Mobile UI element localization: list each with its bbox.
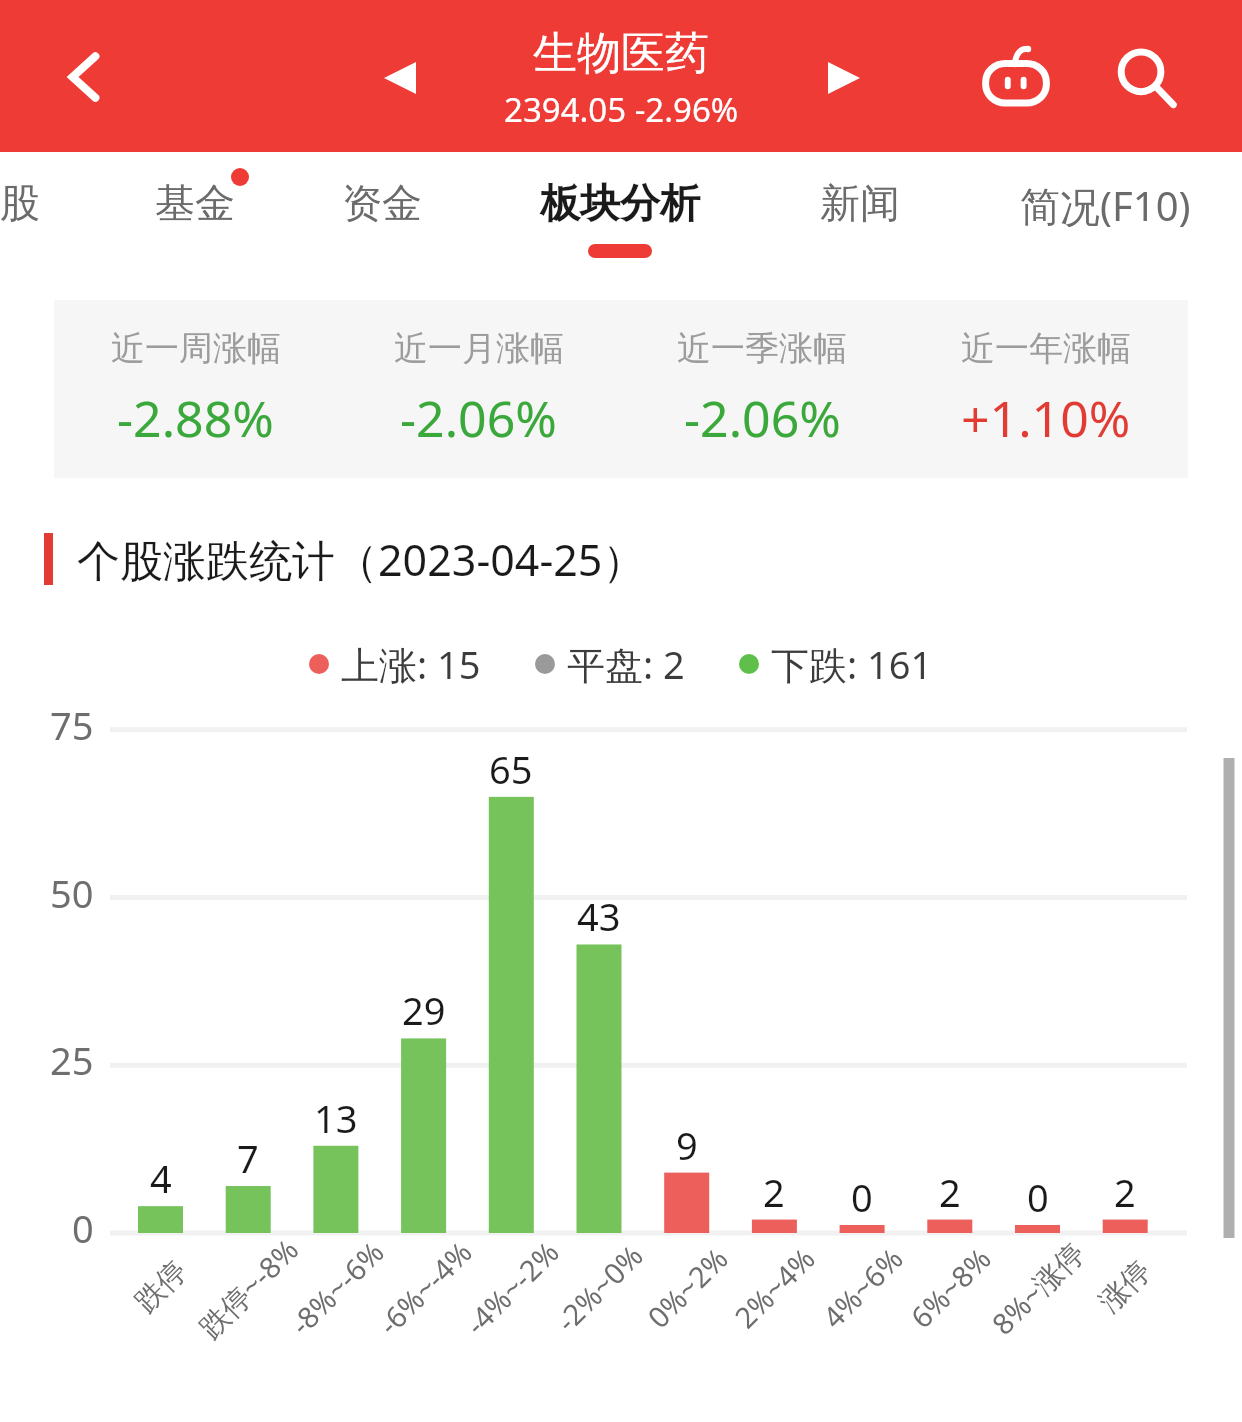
staticText: 4 xyxy=(150,1152,172,1204)
staticText: -2.06% xyxy=(400,384,557,452)
button[interactable]: 股 xyxy=(0,152,140,292)
staticText: 4%~6% xyxy=(814,1239,910,1336)
staticText: 板块分析 xyxy=(540,178,700,228)
staticText: 上涨: 15 xyxy=(341,638,481,690)
button[interactable]: 资金 xyxy=(262,152,502,292)
staticText: -2%~0% xyxy=(547,1235,651,1339)
button[interactable]: 近一年涨幅 xyxy=(904,300,1188,478)
staticText: 近一月涨幅 xyxy=(394,327,564,370)
staticText: 0 xyxy=(1027,1171,1049,1223)
staticText: 新闻 xyxy=(820,178,900,228)
staticText: -4%~-2% xyxy=(456,1232,567,1343)
button[interactable]: 简况(F10) xyxy=(985,152,1225,292)
staticText: 股 xyxy=(0,178,40,228)
staticText: 基金 xyxy=(155,178,235,228)
staticText: 75 xyxy=(50,699,94,751)
staticText: 涨停 xyxy=(1091,1253,1159,1320)
staticText: 25 xyxy=(50,1034,94,1086)
staticText: 9 xyxy=(676,1119,698,1171)
staticText: 0 xyxy=(72,1202,94,1254)
button[interactable]: Back xyxy=(44,36,126,118)
staticText: 跌停~-8% xyxy=(190,1230,307,1346)
button[interactable]: 平盘: 2 xyxy=(535,638,685,690)
button[interactable]: 近一月涨幅 xyxy=(337,300,620,478)
button[interactable]: Previous sector xyxy=(366,44,434,112)
staticText: 43 xyxy=(577,890,621,942)
staticText: 2 xyxy=(939,1166,961,1218)
staticText: -2.06% xyxy=(684,384,841,452)
staticText: 下跌: 161 xyxy=(771,638,933,690)
button[interactable]: 板块分析 xyxy=(500,152,740,292)
staticText: 0 xyxy=(851,1171,873,1223)
staticText: +1.10% xyxy=(961,384,1131,452)
staticText: 资金 xyxy=(342,178,422,228)
staticText: 2 xyxy=(763,1166,785,1218)
button[interactable]: 上涨: 15 xyxy=(309,638,481,690)
button[interactable]: 近一周涨幅 xyxy=(54,300,337,478)
button[interactable]: AI assistant xyxy=(972,34,1060,122)
staticText: -6%~-4% xyxy=(369,1232,480,1343)
staticText: 跌停 xyxy=(127,1253,195,1320)
staticText: 6%~8% xyxy=(902,1239,998,1336)
staticText: 近一季涨幅 xyxy=(677,327,847,370)
staticText: 50 xyxy=(50,867,94,919)
staticText: 2394.05 -2.96% xyxy=(504,87,739,132)
button[interactable]: 下跌: 161 xyxy=(739,638,933,690)
staticText: 近一周涨幅 xyxy=(111,327,281,370)
staticText: 8%~涨停 xyxy=(983,1233,1093,1343)
button[interactable]: 新闻 xyxy=(740,152,980,292)
staticText: -2.88% xyxy=(117,384,274,452)
button[interactable]: 基金 xyxy=(75,152,315,292)
staticText: 7 xyxy=(237,1132,259,1184)
staticText: -8%~-6% xyxy=(281,1232,392,1343)
staticText: 2 xyxy=(1114,1166,1136,1218)
button[interactable]: Search xyxy=(1102,34,1190,122)
staticText: 0%~2% xyxy=(639,1239,735,1336)
staticText: 个股涨跌统计（2023-04-25） xyxy=(77,530,646,588)
staticText: 13 xyxy=(314,1092,358,1144)
staticText: 平盘: 2 xyxy=(567,638,685,690)
staticText: 65 xyxy=(489,743,533,795)
staticText: 2%~4% xyxy=(726,1239,822,1336)
button[interactable]: 生物医药 xyxy=(0,26,1242,132)
staticText: 近一年涨幅 xyxy=(961,327,1131,370)
staticText: 生物医药 xyxy=(533,26,709,81)
staticText: 简况(F10) xyxy=(1020,178,1191,233)
button[interactable]: 近一季涨幅 xyxy=(620,300,904,478)
staticText: 29 xyxy=(402,984,446,1036)
button[interactable]: Next sector xyxy=(810,44,878,112)
